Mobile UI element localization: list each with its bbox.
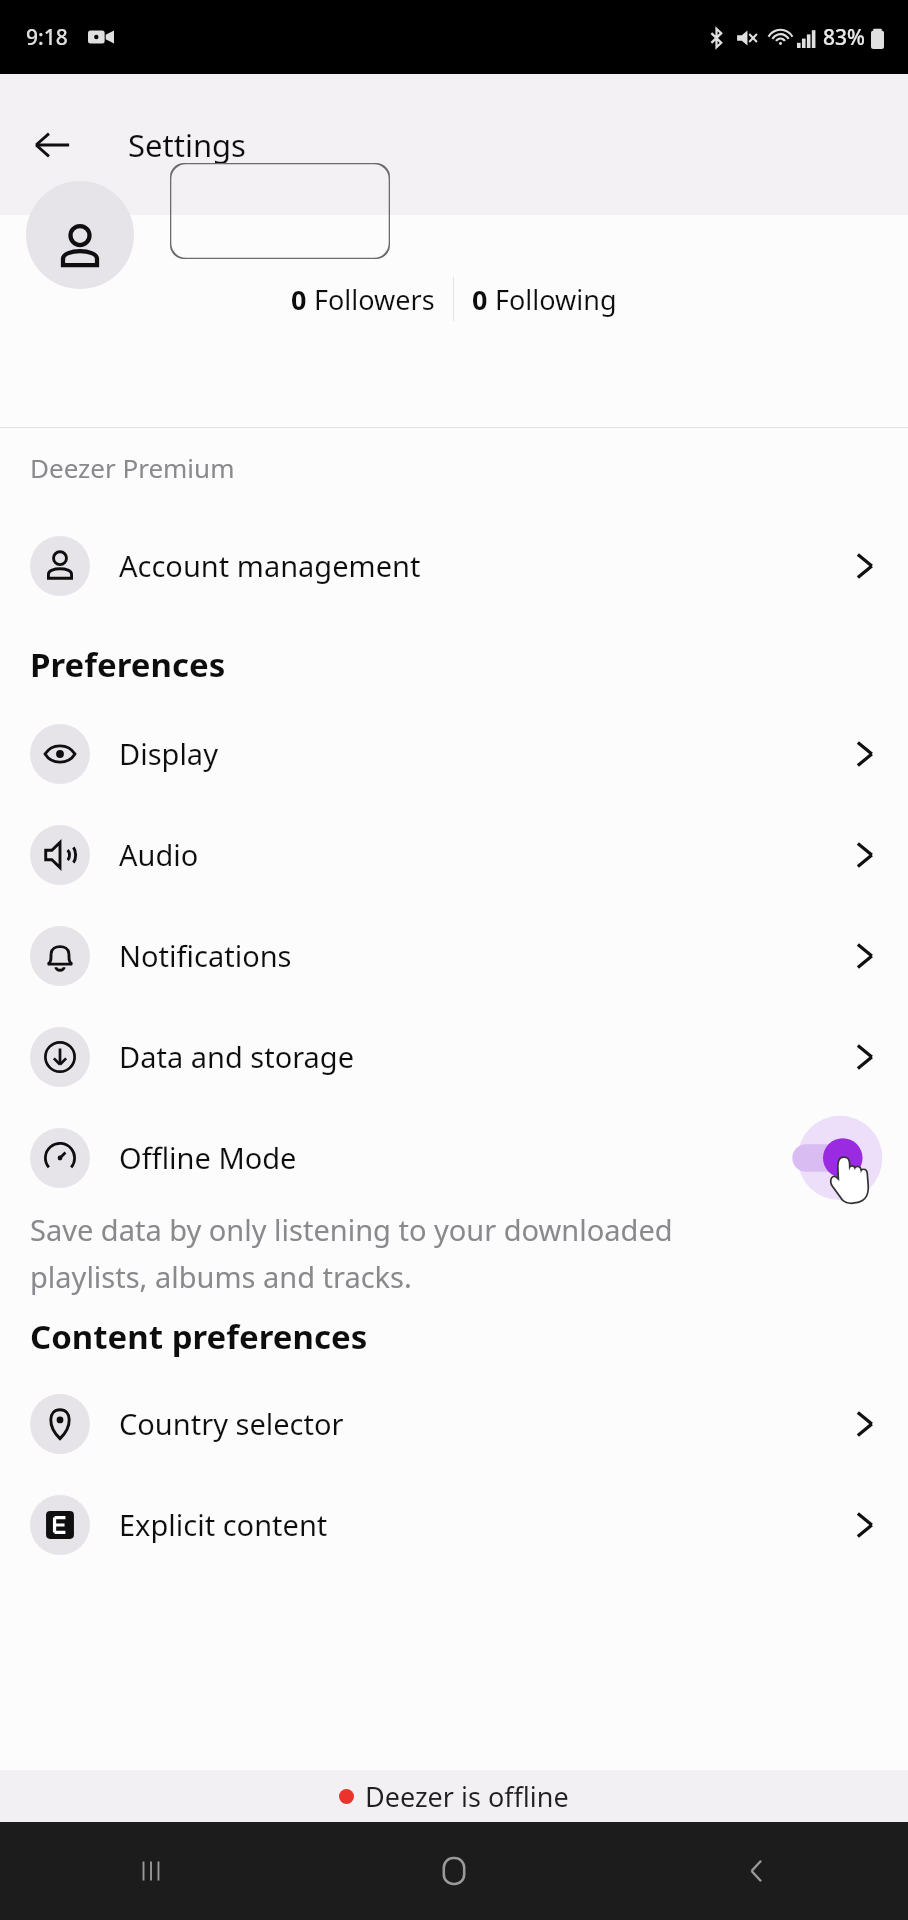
- button[interactable]: Country selector: [0, 1373, 908, 1474]
- staticText: Preferences: [30, 642, 226, 687]
- button[interactable]: Back: [20, 113, 84, 177]
- staticText: Audio: [119, 835, 199, 874]
- staticText: 0: [472, 281, 495, 318]
- staticText: Content preferences: [30, 1314, 368, 1359]
- button[interactable]: Data and storage: [0, 1006, 908, 1107]
- button[interactable]: Account management: [0, 515, 908, 616]
- staticText: Save data by only listening to your down…: [30, 1210, 673, 1249]
- staticText: Offline Mode: [119, 1138, 297, 1177]
- staticText: 0: [291, 281, 314, 318]
- button[interactable]: 0: [472, 281, 617, 318]
- button[interactable]: Back: [605, 1822, 908, 1920]
- button[interactable]: [794, 1112, 886, 1204]
- button[interactable]: Recent apps: [0, 1822, 302, 1920]
- button[interactable]: Display: [0, 703, 908, 804]
- button[interactable]: Offline Mode: [0, 1107, 908, 1208]
- button[interactable]: Audio: [0, 804, 908, 905]
- button[interactable]: [170, 163, 390, 259]
- button[interactable]: Home: [302, 1822, 605, 1920]
- button[interactable]: [26, 181, 134, 289]
- staticText: Account management: [119, 546, 421, 585]
- staticText: 9:18: [26, 23, 68, 52]
- button[interactable]: Explicit content: [0, 1474, 908, 1575]
- button[interactable]: Notifications: [0, 905, 908, 1006]
- staticText: Data and storage: [119, 1037, 355, 1076]
- staticText: Deezer is offline: [365, 1778, 569, 1815]
- staticText: Followers: [314, 281, 435, 318]
- staticText: playlists, albums and tracks.: [30, 1257, 412, 1296]
- staticText: Notifications: [119, 936, 292, 975]
- staticText: Country selector: [119, 1404, 344, 1443]
- button[interactable]: 0: [291, 281, 435, 318]
- staticText: 83%: [823, 23, 865, 52]
- staticText: Deezer Premium: [30, 450, 235, 485]
- staticText: Display: [119, 734, 218, 773]
- staticText: Explicit content: [119, 1505, 328, 1544]
- staticText: Settings: [128, 124, 246, 166]
- staticText: Following: [495, 281, 617, 318]
